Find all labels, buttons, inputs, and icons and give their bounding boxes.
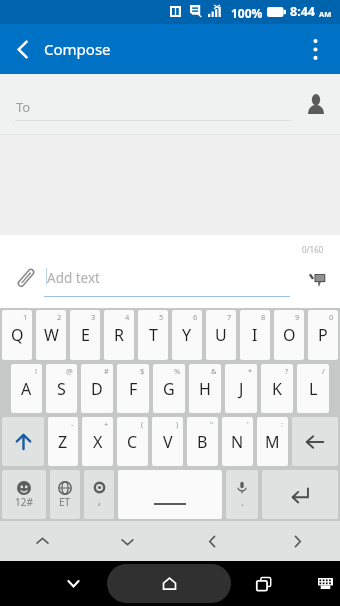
staticText: . <box>241 495 244 509</box>
button[interactable]: Space <box>118 470 222 519</box>
staticText: 5 <box>159 312 164 322</box>
staticText: R <box>114 324 124 346</box>
button[interactable]: Move left <box>170 521 255 561</box>
staticText: Compose <box>44 39 111 59</box>
button[interactable]: Move up <box>0 521 85 561</box>
button[interactable]: 9 <box>274 310 304 360</box>
button[interactable]: ? <box>261 364 293 413</box>
staticText: E <box>81 324 90 346</box>
button[interactable]: @ <box>46 364 77 413</box>
button[interactable]: & <box>189 364 221 413</box>
staticText: 7 <box>227 312 232 322</box>
staticText: To <box>16 98 31 116</box>
staticText: 8:44 <box>290 3 315 20</box>
button[interactable]: Hide keyboard <box>51 561 95 606</box>
button[interactable]: # <box>81 364 113 413</box>
staticText: 0 <box>329 312 334 322</box>
button[interactable]: : <box>257 417 288 466</box>
button[interactable]: 3 <box>70 310 100 360</box>
staticText: * <box>248 366 253 376</box>
staticText: Add text <box>47 269 100 287</box>
button[interactable]: ( <box>117 417 148 466</box>
button[interactable]: Symbols <box>2 470 46 519</box>
button[interactable]: * <box>225 364 257 413</box>
button[interactable]: 1 <box>2 310 32 360</box>
button[interactable]: 5 <box>138 310 168 360</box>
staticText: C <box>127 431 138 453</box>
button[interactable]: Move down <box>85 521 170 561</box>
button[interactable]: Change language <box>50 470 80 519</box>
staticText: 6 <box>193 312 198 322</box>
staticText: ) <box>176 419 179 429</box>
staticText: X <box>93 431 103 453</box>
button[interactable]: More options <box>290 24 340 74</box>
button[interactable]: Change keyboard <box>305 561 340 606</box>
button[interactable]: Voice input <box>226 470 258 519</box>
button[interactable]: - <box>48 417 78 466</box>
button[interactable]: Recent apps <box>242 561 286 606</box>
button[interactable]: % <box>153 364 185 413</box>
button[interactable]: ) <box>152 417 183 466</box>
staticText: A <box>21 378 32 400</box>
staticText: & <box>211 366 217 376</box>
staticText: ' <box>247 419 249 429</box>
button[interactable]: Move right <box>255 521 340 561</box>
staticText: S <box>57 378 66 400</box>
staticText: % <box>174 366 181 376</box>
staticText: Q <box>11 324 24 346</box>
button[interactable]: Send message <box>296 263 332 293</box>
button[interactable]: / <box>297 364 329 413</box>
staticText: - <box>71 419 74 429</box>
button[interactable]: 7 <box>206 310 236 360</box>
staticText: L <box>309 378 318 400</box>
staticText: + <box>104 419 109 429</box>
staticText: 1 <box>23 312 28 322</box>
staticText: I <box>252 324 258 346</box>
staticText: O <box>283 324 296 346</box>
staticText: F <box>129 378 138 400</box>
staticText: ( <box>141 419 144 429</box>
button[interactable]: Back <box>0 24 44 74</box>
button[interactable]: 6 <box>172 310 202 360</box>
staticText: M <box>265 431 280 453</box>
staticText: 9 <box>295 312 300 322</box>
staticText: J <box>239 378 244 400</box>
staticText: # <box>104 366 109 376</box>
staticText: 100% <box>231 5 263 21</box>
staticText: H <box>199 378 211 400</box>
staticText: $ <box>140 366 145 376</box>
staticText: N <box>231 431 244 453</box>
button[interactable]: 2 <box>36 310 66 360</box>
staticText: V <box>163 431 173 453</box>
staticText: B <box>197 431 208 453</box>
staticText: 0/160 <box>302 244 324 255</box>
staticText: G <box>163 378 175 400</box>
button[interactable]: 0 <box>308 310 338 360</box>
staticText: ET <box>59 495 71 509</box>
staticText: T <box>149 324 158 346</box>
staticText: Y <box>182 324 192 346</box>
staticText: / <box>322 366 325 376</box>
staticText: W <box>44 324 59 346</box>
staticText: 12# <box>15 495 33 509</box>
button[interactable]: 8 <box>240 310 270 360</box>
button[interactable]: + <box>82 417 113 466</box>
button[interactable]: ! <box>11 364 42 413</box>
button[interactable]: Home <box>107 564 231 603</box>
button[interactable]: Attach <box>10 262 42 292</box>
button[interactable]: Shift <box>2 417 44 466</box>
staticText: 8 <box>261 312 266 322</box>
button[interactable]: " <box>187 417 218 466</box>
staticText: ? <box>285 366 289 376</box>
button[interactable]: $ <box>117 364 149 413</box>
staticText: Z <box>58 431 68 453</box>
button[interactable]: 4 <box>104 310 134 360</box>
staticText: : <box>281 419 284 429</box>
button[interactable]: Backspace <box>292 417 338 466</box>
button[interactable]: Settings <box>84 470 114 519</box>
staticText: P <box>318 324 328 346</box>
button[interactable]: ' <box>222 417 253 466</box>
button[interactable]: Add contact <box>298 86 334 122</box>
button[interactable]: Enter <box>262 470 338 519</box>
staticText: ! <box>35 366 38 376</box>
